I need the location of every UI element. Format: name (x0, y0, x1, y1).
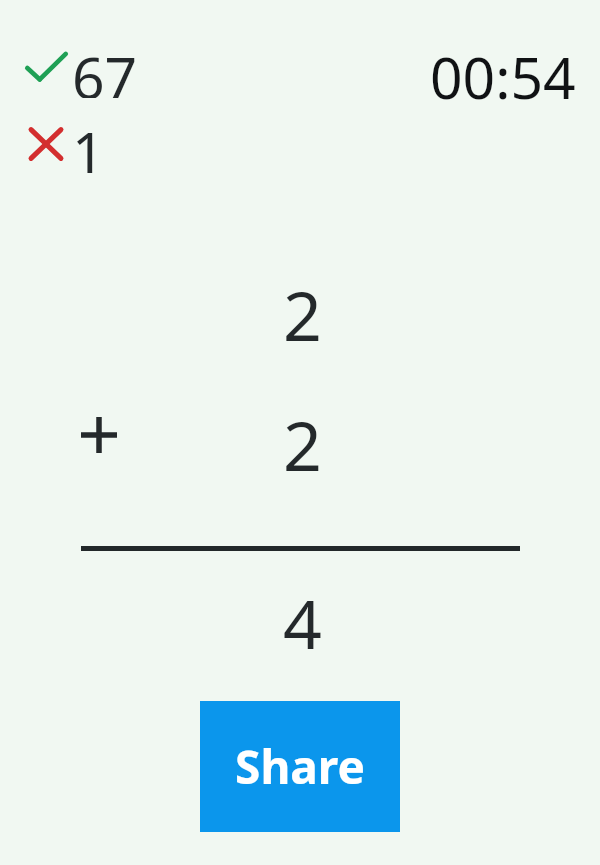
staticText: 2 (240, 398, 365, 478)
staticText: 4 (240, 576, 365, 656)
staticText: 2 (240, 268, 365, 348)
staticText: 67 (72, 38, 138, 98)
button[interactable]: 00:54 (430, 38, 576, 116)
staticText: 1 (72, 113, 105, 173)
staticText: Share (235, 735, 365, 798)
button[interactable]: Incorrect answers: 1 (20, 113, 140, 173)
button[interactable]: Correct answers: 67 (20, 38, 150, 98)
button[interactable]: Share (200, 701, 400, 832)
staticText: 00:54 (430, 38, 576, 116)
